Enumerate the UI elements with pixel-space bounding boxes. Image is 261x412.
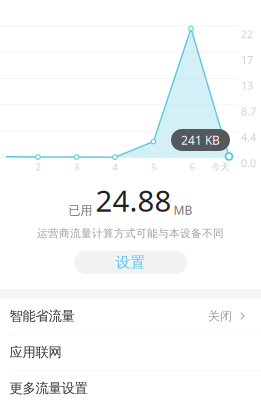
staticText: 24.88 bbox=[95, 181, 171, 220]
staticText: 已用 bbox=[68, 203, 92, 218]
button[interactable]: 设置 bbox=[74, 251, 187, 274]
staticText: 5 bbox=[151, 161, 156, 173]
staticText: MB bbox=[173, 202, 192, 218]
staticText: 4.4 bbox=[241, 130, 256, 144]
staticText: 更多流量设置 bbox=[9, 380, 87, 397]
button[interactable]: 应用联网 bbox=[0, 334, 261, 370]
button[interactable]: 更多流量设置 bbox=[0, 371, 261, 406]
staticText: 6 bbox=[189, 161, 194, 173]
staticText: 3 bbox=[74, 161, 79, 173]
staticText: 智能省流量 bbox=[9, 308, 74, 324]
staticText: 今天 bbox=[211, 161, 229, 173]
staticText: 241 KB bbox=[181, 132, 220, 148]
staticText: 2 bbox=[35, 161, 40, 173]
staticText: 13 bbox=[241, 78, 253, 93]
staticText: 设置 bbox=[115, 253, 145, 271]
staticText: 22 bbox=[241, 27, 253, 41]
staticText: 应用联网 bbox=[9, 344, 61, 360]
staticText: 4 bbox=[112, 161, 117, 173]
staticText: 关闭 bbox=[208, 309, 232, 323]
staticText: 0.0 bbox=[241, 156, 256, 170]
staticText: 8.7 bbox=[241, 104, 256, 118]
button[interactable]: 智能省流量 bbox=[0, 298, 261, 334]
staticText: 运营商流量计算方式可能与本设备不同 bbox=[37, 227, 224, 240]
staticText: 17 bbox=[241, 53, 253, 67]
